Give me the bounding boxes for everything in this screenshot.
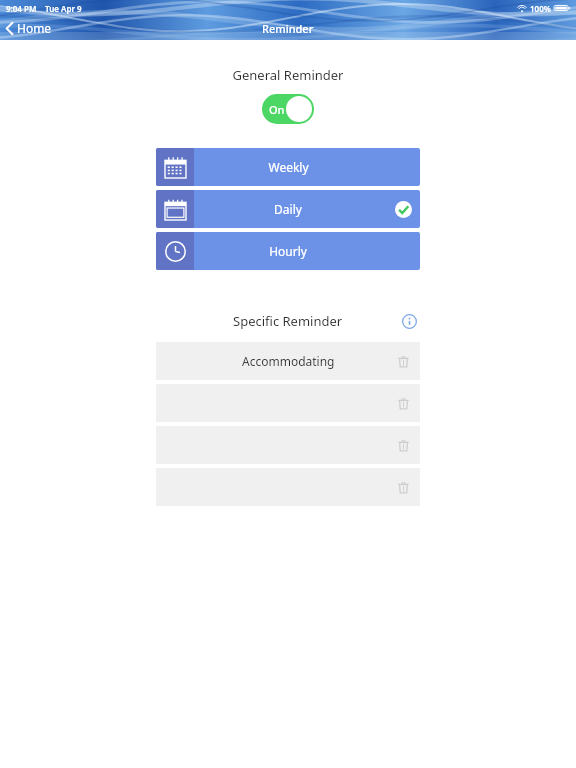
staticText: Weekly [268, 159, 309, 175]
button[interactable]: Hourly [156, 232, 420, 270]
button[interactable]: Delete [392, 392, 414, 414]
staticText: Accommodating [242, 353, 335, 369]
button[interactable]: Delete [392, 434, 414, 456]
button[interactable]: General reminder toggle, on [262, 94, 314, 124]
button[interactable]: Weekly [156, 148, 420, 186]
staticText: 100% [530, 3, 551, 14]
button[interactable]: Accommodating [156, 342, 420, 380]
button[interactable]: Information [398, 310, 420, 332]
staticText: Daily [274, 201, 302, 217]
staticText: Reminder [262, 21, 314, 36]
button[interactable]: Delete [392, 350, 414, 372]
staticText: Home [17, 20, 52, 36]
button[interactable]: Delete [392, 476, 414, 498]
button[interactable]: Daily [156, 190, 420, 228]
staticText: On [269, 102, 285, 117]
staticText: General Reminder [0, 66, 576, 84]
staticText: 9:04 PM [6, 3, 37, 14]
staticText: Hourly [269, 243, 307, 259]
staticText: Tue Apr 9 [45, 3, 82, 14]
button[interactable]: Home [0, 18, 58, 38]
staticText: Specific Reminder [233, 312, 343, 330]
